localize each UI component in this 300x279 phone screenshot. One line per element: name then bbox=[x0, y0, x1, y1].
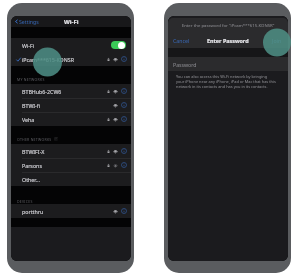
button[interactable]: Join bbox=[272, 37, 282, 44]
button[interactable]: Wi-Fi on bbox=[111, 41, 126, 49]
button[interactable]: Wi-Fi bbox=[11, 38, 131, 52]
button[interactable]: iPcam***615-KDNSR bbox=[11, 52, 131, 66]
staticText: BTWI-fi bbox=[22, 102, 41, 109]
staticText: Enter the password for “iPcam***615-KDNS… bbox=[168, 22, 288, 28]
staticText: BTWIFI-X bbox=[22, 148, 45, 155]
staticText: Wi-Fi bbox=[64, 18, 79, 26]
staticText: portthru bbox=[22, 208, 44, 215]
staticText: OTHER NETWORKS bbox=[17, 137, 52, 142]
button[interactable]: More info bbox=[121, 88, 127, 94]
button[interactable]: More info bbox=[121, 148, 127, 154]
button[interactable]: Veha bbox=[11, 112, 131, 126]
button[interactable]: More info bbox=[121, 208, 127, 214]
staticText: Veha bbox=[22, 116, 35, 123]
staticText: You can also access this Wi-Fi network b… bbox=[176, 74, 276, 89]
button[interactable]: More info bbox=[121, 116, 127, 122]
button[interactable]: BTWIFI-X bbox=[11, 144, 131, 158]
button[interactable]: portthru bbox=[11, 204, 131, 218]
button[interactable]: Other… bbox=[11, 172, 131, 186]
button[interactable]: Settings bbox=[14, 16, 39, 27]
button[interactable]: More info bbox=[121, 102, 127, 108]
staticText: Other… bbox=[22, 176, 40, 183]
button[interactable]: More info bbox=[121, 56, 127, 62]
button[interactable]: Cancel bbox=[173, 37, 190, 44]
staticText: Settings bbox=[19, 18, 39, 25]
staticText: Wi-Fi bbox=[22, 42, 35, 49]
staticText: Parsons bbox=[22, 162, 42, 169]
button[interactable]: Password bbox=[168, 57, 288, 71]
button[interactable]: More info bbox=[121, 162, 127, 168]
staticText: Enter Password bbox=[207, 37, 249, 44]
staticText: MY NETWORKS bbox=[17, 77, 45, 82]
staticText: Password bbox=[173, 61, 197, 68]
button[interactable]: Parsons bbox=[11, 158, 131, 172]
staticText: DEVICES bbox=[17, 199, 33, 204]
button[interactable]: BTWI-fi bbox=[11, 98, 131, 112]
button[interactable]: BTBHub6-2CW6 bbox=[11, 84, 131, 98]
staticText: iPcam***615-KDNSR bbox=[22, 56, 74, 63]
staticText: BTBHub6-2CW6 bbox=[22, 88, 62, 95]
